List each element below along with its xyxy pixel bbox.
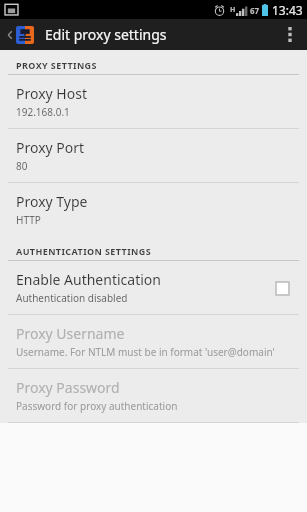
staticText: Proxy Host: [16, 84, 87, 103]
button[interactable]: Proxy Host: [0, 75, 307, 128]
staticText: HTTP: [16, 213, 41, 227]
button[interactable]: Proxy Username: [0, 315, 307, 368]
button[interactable]: Enable Authentication: [0, 261, 307, 314]
staticText: Proxy Password: [16, 378, 120, 397]
staticText: H: [230, 5, 236, 15]
staticText: 80: [16, 159, 28, 173]
staticText: Authentication disabled: [16, 291, 128, 305]
staticText: Edit proxy settings: [45, 25, 167, 44]
staticText: AUTHENTICATION SETTINGS: [16, 245, 152, 257]
button[interactable]: Proxy Type: [0, 183, 307, 236]
staticText: PROXY SETTINGS: [16, 59, 97, 71]
button[interactable]: More options: [273, 19, 307, 50]
staticText: Proxy Username: [16, 324, 125, 343]
staticText: 13:43: [272, 2, 303, 18]
staticText: Proxy Port: [16, 138, 85, 157]
staticText: Password for proxy authentication: [16, 399, 178, 413]
staticText: 67: [250, 5, 260, 16]
staticText: Enable Authentication: [16, 270, 161, 289]
button[interactable]: Proxy Port: [0, 129, 307, 182]
button[interactable]: Enable Authentication checkbox: [269, 275, 295, 301]
button[interactable]: Navigate up: [4, 26, 37, 44]
button[interactable]: Proxy Password: [0, 369, 307, 422]
staticText: 192.168.0.1: [16, 105, 70, 119]
staticText: Username. For NTLM must be in format 'us…: [16, 345, 275, 359]
staticText: Proxy Type: [16, 192, 88, 211]
